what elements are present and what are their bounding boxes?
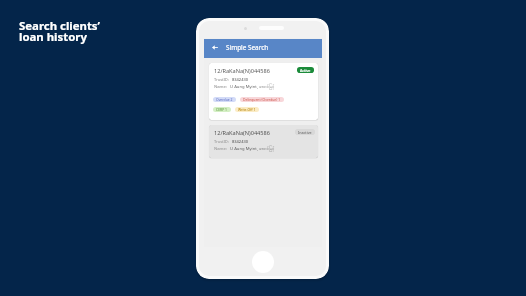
staticText: Active [300,68,311,73]
button[interactable]: CERP 1 [213,107,231,112]
button[interactable]: Delinquent (Overdue) 1 [240,97,284,102]
staticText: Delinquent (Overdue) 1 [243,97,281,102]
staticText: 8342430 [232,77,249,82]
staticText: U Aung Myint, အောင်မြင့် [230,84,275,91]
button[interactable]: Back [204,39,322,58]
button[interactable]: 12/RaKaNa(N)044586 [209,63,318,120]
staticText: CERP 1 [216,107,228,112]
staticText: Inactive [298,130,312,135]
staticText: loan history [19,29,87,45]
staticText: 12/RaKaNa(N)044586 [214,129,270,137]
staticText: Name: [214,146,227,152]
button[interactable]: Home [252,251,274,273]
staticText: TrustID: [214,77,229,82]
button[interactable]: Active [297,67,314,73]
button[interactable]: 12/RaKaNa(N)044586 [209,125,318,158]
staticText: Name: [214,84,227,90]
button[interactable]: Overdue 2 [213,97,236,102]
staticText: TrustID: [214,139,229,144]
staticText: U Aung Myint, အောင်မြင့် [230,146,275,153]
button[interactable]: Inactive [295,129,315,135]
staticText: Simple Search [226,43,269,52]
staticText: 8342430 [232,139,249,144]
staticText: Search clients’ [19,18,101,34]
staticText: 12/RaKaNa(N)044586 [214,67,270,75]
staticText: Write-Off 1 [238,107,256,112]
button[interactable]: Write-Off 1 [235,107,259,112]
staticText: Overdue 2 [216,97,233,102]
button[interactable]: Back [205,38,225,57]
